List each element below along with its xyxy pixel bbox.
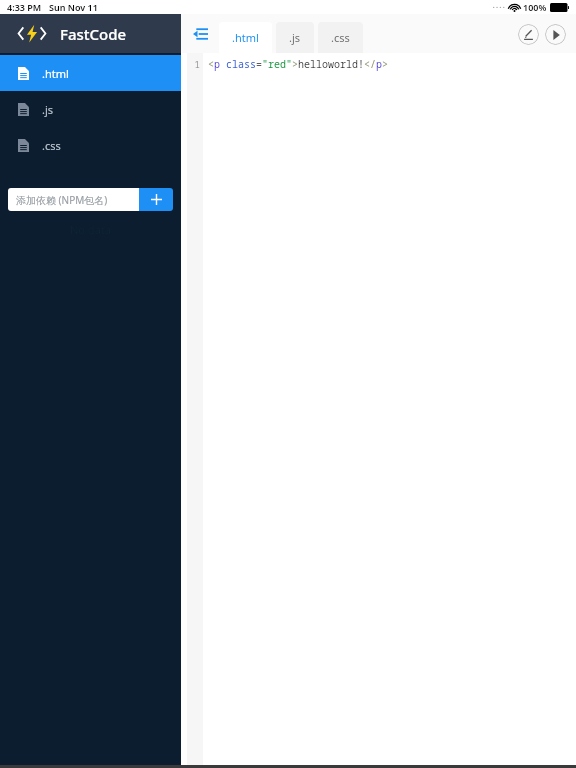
button[interactable]: .html — [219, 22, 272, 53]
staticText: .js — [289, 30, 301, 45]
staticText: FastCode — [60, 24, 127, 44]
staticText: <p class="red">helloworld!</p> — [208, 57, 388, 71]
staticText: .css — [42, 138, 61, 153]
button[interactable]: .css — [0, 127, 181, 163]
staticText: Sun Nov 11 — [49, 1, 98, 13]
button[interactable]: Add dependency — [139, 188, 173, 211]
button[interactable]: Toggle sidebar — [181, 14, 219, 53]
button[interactable]: Edit — [518, 24, 539, 45]
staticText: .html — [232, 30, 259, 45]
staticText: 1 — [194, 58, 200, 70]
button[interactable]: .js — [276, 22, 314, 53]
staticText: .js — [42, 102, 54, 117]
button[interactable]: .css — [318, 22, 363, 53]
staticText: 100% — [523, 1, 547, 13]
staticText: .html — [42, 66, 69, 81]
staticText: .css — [331, 30, 350, 45]
button[interactable]: .js — [0, 91, 181, 127]
button[interactable]: 添加依赖 (NPM包名) — [8, 188, 139, 211]
staticText: 4:33 PM — [7, 1, 42, 13]
button[interactable]: FastCode — [0, 14, 181, 53]
button[interactable]: Run — [545, 24, 566, 45]
button[interactable]: .html — [0, 55, 181, 91]
staticText: 添加依赖 (NPM包名) — [16, 193, 108, 207]
